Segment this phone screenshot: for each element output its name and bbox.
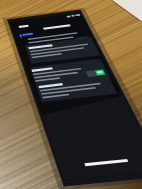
- other: Phone on a wooden table showing a settin…: [0, 0, 142, 189]
